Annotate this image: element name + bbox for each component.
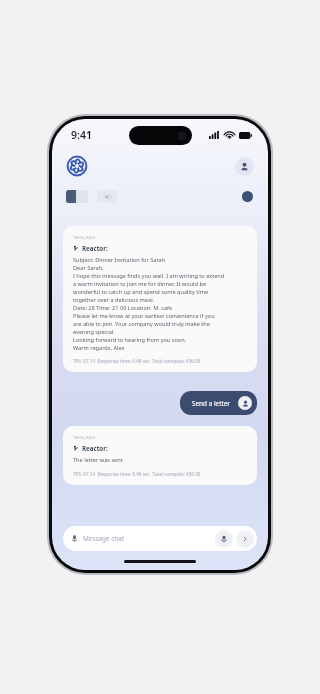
staticText: 9:41 bbox=[71, 128, 92, 142]
button[interactable]: 18.06.2024 bbox=[63, 226, 257, 372]
staticText: Dear Sarah, bbox=[73, 264, 104, 272]
staticText: 18.06.2024 bbox=[73, 234, 95, 240]
staticText: The letter was sent bbox=[73, 456, 123, 464]
button[interactable]: App logo bbox=[66, 155, 88, 177]
staticText: Date: 28 Time: 21 00 Location: M. cafe bbox=[73, 304, 173, 312]
staticText: TPS: 67.14 Response time: 6.49 sec Total… bbox=[73, 471, 201, 477]
button[interactable]: Voice input bbox=[215, 530, 233, 548]
staticText: Subject: Dinner Invitation for Sarah bbox=[73, 256, 166, 264]
staticText: evening special. bbox=[73, 328, 115, 336]
staticText: 18.06.2024 bbox=[73, 434, 95, 440]
staticText: a warm invitation to join me for dinner.… bbox=[73, 280, 207, 288]
staticText: Please let me know at your earliest conv… bbox=[73, 312, 215, 320]
button[interactable]: Message chat bbox=[63, 526, 257, 551]
button[interactable]: Send a letter bbox=[180, 391, 257, 415]
button[interactable]: Send bbox=[236, 530, 254, 548]
staticText: Looking forward to hearing from you soon… bbox=[73, 336, 187, 344]
staticText: are able to join. Your company would tru… bbox=[73, 320, 210, 328]
button[interactable]: 18.06.2024 bbox=[63, 426, 257, 485]
button[interactable]: Layout bbox=[66, 190, 88, 203]
staticText: Warm regards, Alex bbox=[73, 344, 125, 352]
button[interactable]: Toggle bbox=[230, 190, 254, 203]
button[interactable]: Account bbox=[235, 157, 254, 176]
staticText: Message chat bbox=[83, 534, 125, 543]
staticText: together over a delicious meal. bbox=[73, 296, 155, 304]
button[interactable]: Sound bbox=[97, 190, 118, 203]
staticText: wonderful to catch up and spend some qua… bbox=[73, 288, 209, 296]
staticText: Reactor: bbox=[82, 244, 108, 252]
staticText: Send a letter bbox=[192, 399, 231, 408]
staticText: I hope this message finds you well. I am… bbox=[73, 272, 225, 280]
staticText: TPS: 67.14 Response time: 6.49 sec Total… bbox=[73, 358, 201, 364]
staticText: Reactor: bbox=[82, 444, 108, 452]
